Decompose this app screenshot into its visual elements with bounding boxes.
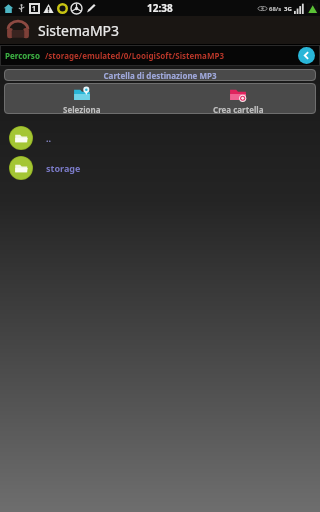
staticText: 68/s [269,5,282,13]
staticText: 12:38 [147,1,173,15]
staticText: Cartella di destinazione MP3 [103,70,217,81]
button[interactable]: Back [298,47,315,64]
staticText: .. [46,132,52,144]
staticText: Crea cartella [213,104,264,114]
button[interactable]: Seleziona [4,83,160,114]
staticText: 3G [284,5,292,13]
staticText: SistemaMP3 [38,21,120,40]
staticText: storage [46,162,81,174]
button[interactable]: Crea cartella [160,83,316,114]
staticText: Percorso [5,50,40,61]
staticText: /storage/emulated/0/LooigiSoft/SistemaMP… [45,50,224,61]
button[interactable]: storage [0,153,320,183]
button[interactable]: .. [0,123,320,153]
staticText: Seleziona [63,104,101,114]
staticText: 1 [32,4,37,14]
